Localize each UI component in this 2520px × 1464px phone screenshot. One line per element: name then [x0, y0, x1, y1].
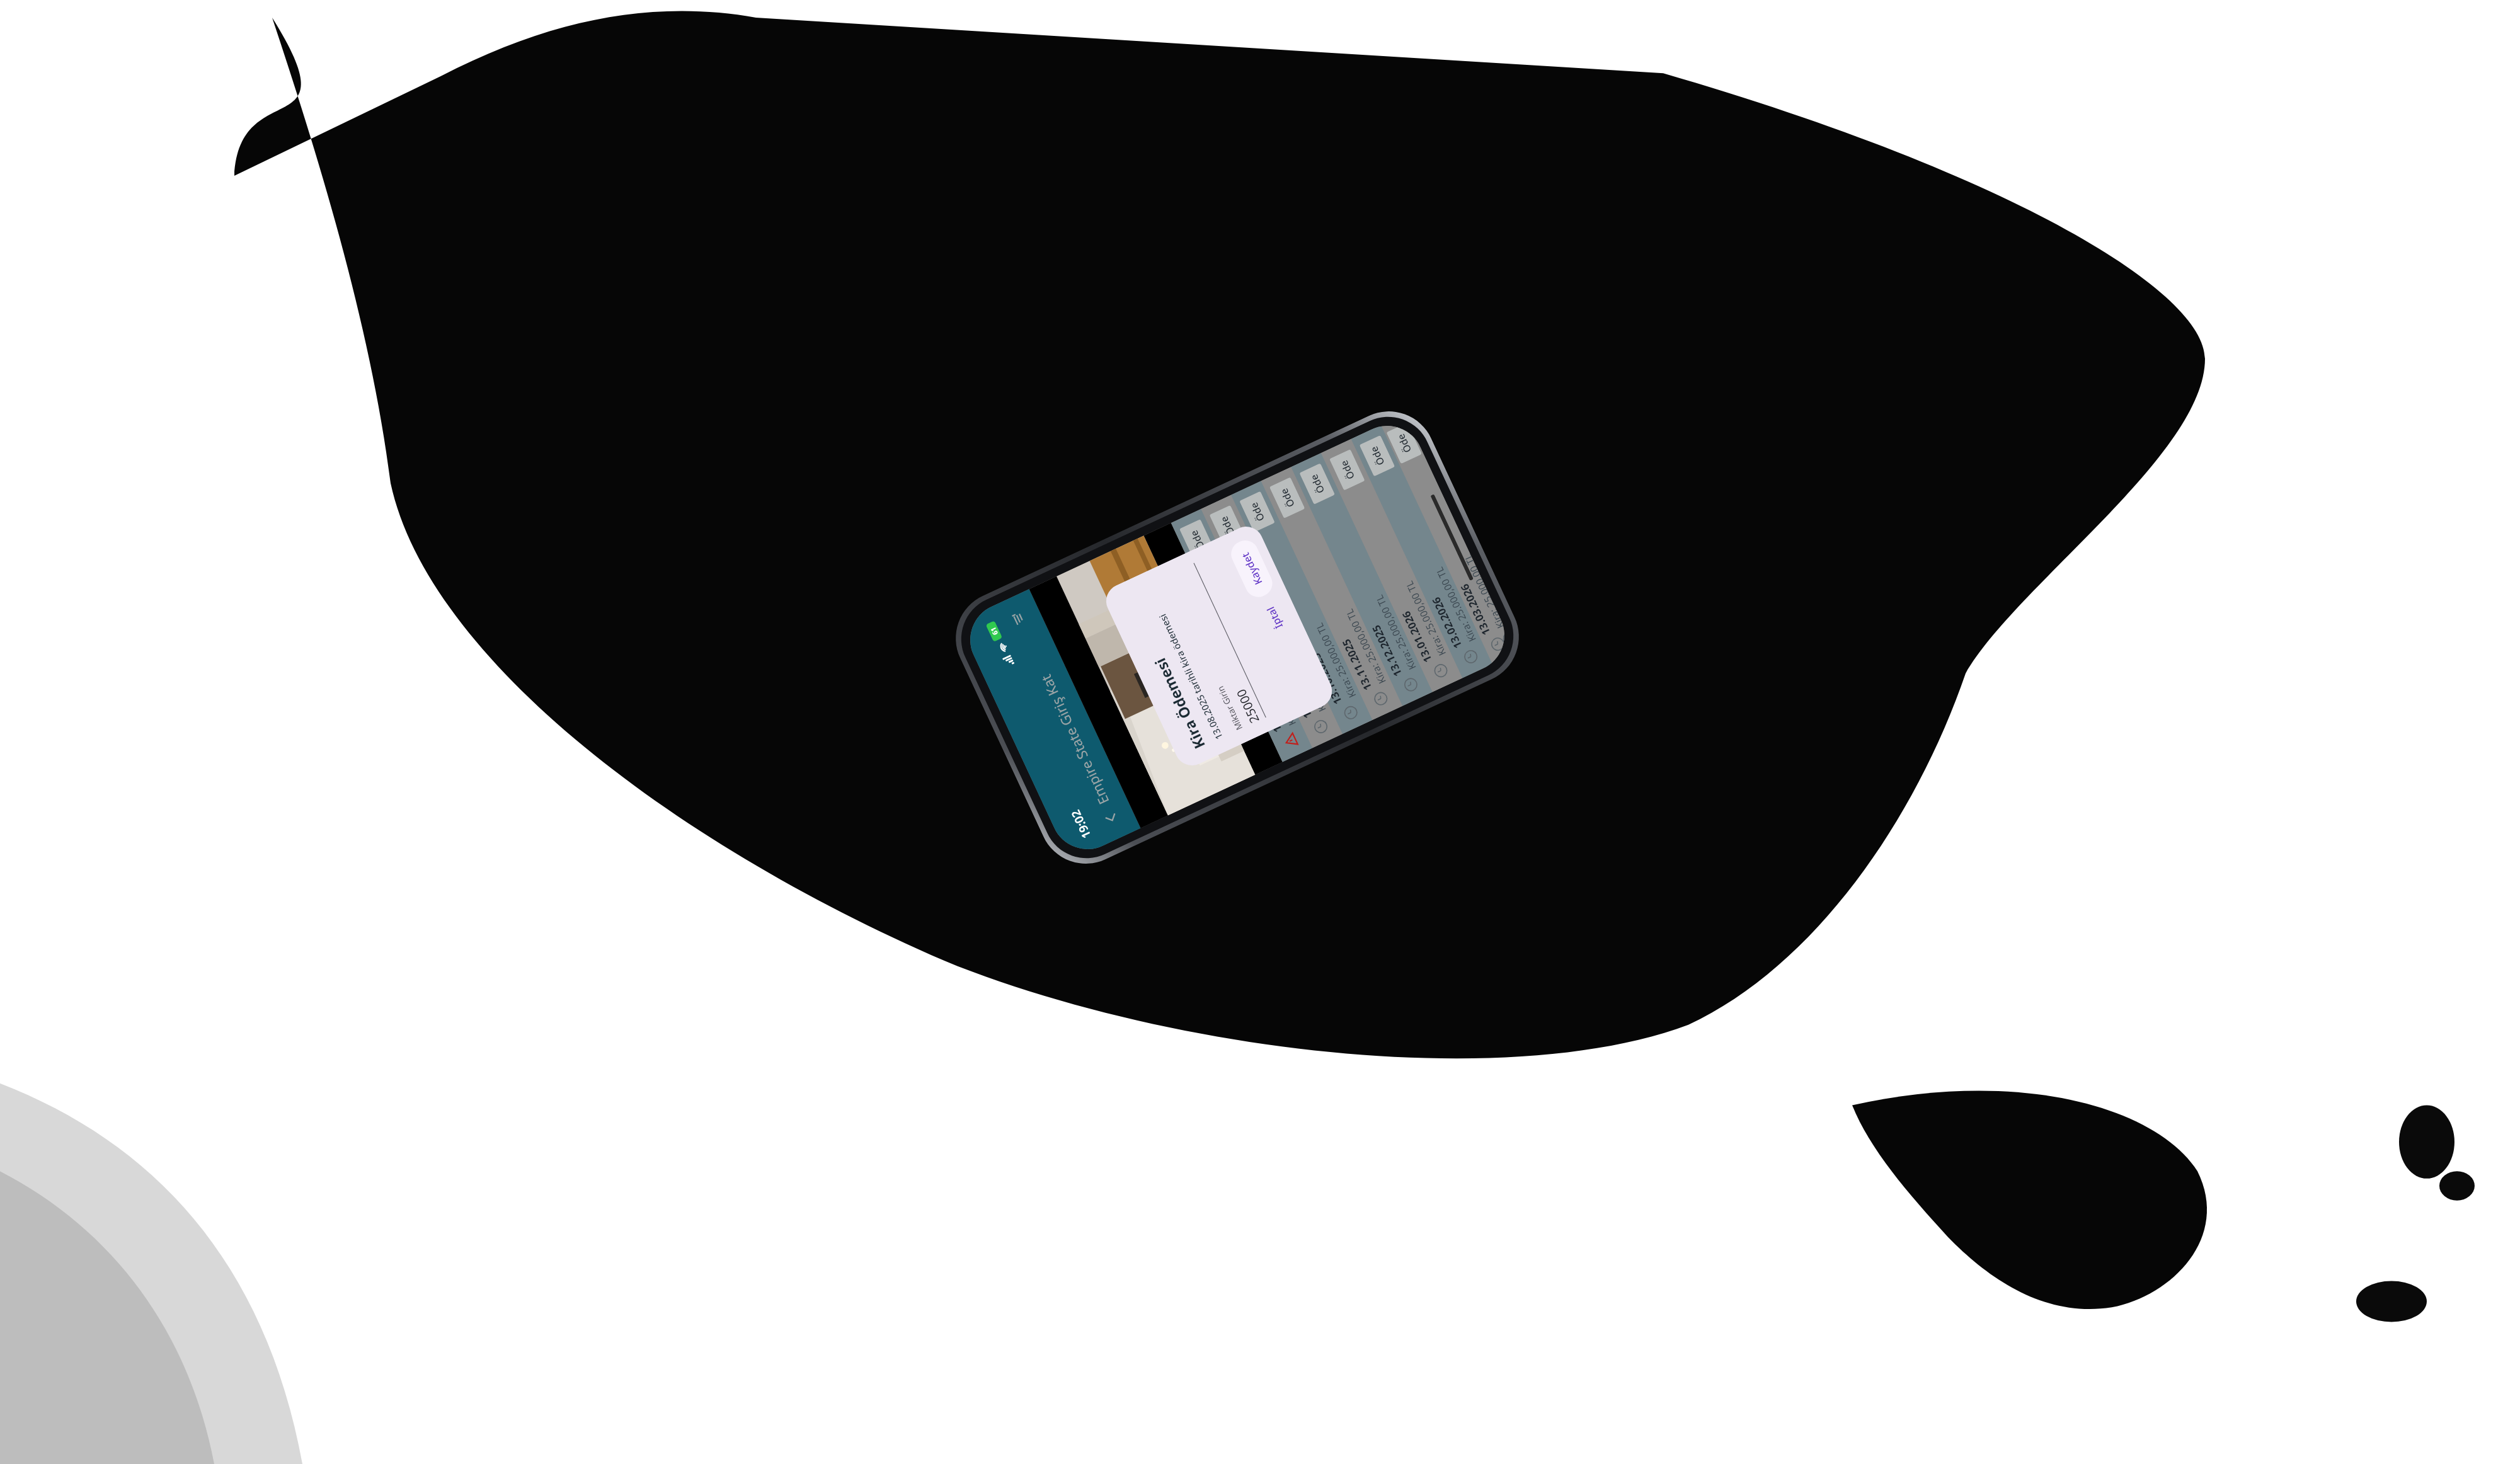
staticText: 13.12.2025 [1369, 623, 1405, 679]
button[interactable]: Menu [1002, 602, 1035, 635]
staticText: Kira: 25.000,00 TL [1461, 553, 1504, 631]
staticText: Kira: 25.000,00 TL [1312, 621, 1359, 700]
staticText: Öde [1367, 444, 1387, 468]
button[interactable]: Kaydet [1227, 536, 1277, 601]
button[interactable]: 13.01.2026 [1321, 439, 1463, 692]
staticText: Öde [1307, 472, 1327, 496]
staticText: Kira: 25.000,00 TL [1432, 565, 1479, 644]
staticText: 13.08.2025 tarihli kira ödemesi [1156, 612, 1225, 742]
staticText: Kira: 25.000,00 TL [1282, 635, 1329, 714]
button[interactable]: Öde [1329, 449, 1365, 491]
staticText: Öde [1187, 528, 1207, 552]
button[interactable]: 13.11.2025 [1261, 467, 1403, 720]
button[interactable]: Öde [1209, 505, 1245, 546]
button[interactable]: Öde [1299, 463, 1335, 505]
staticText: Öde [1277, 486, 1297, 510]
button[interactable]: Öde [1239, 491, 1275, 532]
staticText: Kira: 25.000,00 TL [1252, 649, 1299, 728]
staticText: 13.09.2025 [1279, 665, 1315, 721]
staticText: Miktar Girin [1214, 684, 1245, 732]
staticText: Öde [1394, 432, 1414, 455]
staticText: Kaydet [1238, 550, 1265, 587]
button[interactable]: İptal [1255, 594, 1294, 641]
staticText: Kira: 25.000,00 TL [1372, 593, 1419, 672]
button[interactable]: Back [1095, 801, 1127, 834]
button[interactable]: 13.12.2025 [1291, 453, 1433, 706]
staticText: 13.10.2025 [1309, 651, 1345, 707]
staticText: İptal [1263, 604, 1286, 631]
button[interactable]: 13.09.2025 [1201, 495, 1343, 748]
staticText: Kira: 25.000,00 TL [1402, 579, 1449, 658]
staticText: Öde [1217, 514, 1237, 538]
button[interactable]: 13.02.2026 [1351, 425, 1493, 678]
button[interactable]: 13.03.2026 [1381, 414, 1516, 664]
button[interactable]: Öde [1179, 519, 1215, 560]
staticText: 13.03.2026 [1457, 582, 1493, 638]
button[interactable]: 13.10.2025 [1231, 481, 1373, 734]
staticText: Kira: 25.000,00 TL [1342, 607, 1389, 686]
staticText: 25000 [1232, 686, 1263, 726]
staticText: 19:02 [1067, 807, 1094, 841]
staticText: Kira Ödemesi [1150, 655, 1209, 752]
staticText: 13.11.2025 [1339, 637, 1375, 693]
staticText: 61 [988, 626, 1000, 637]
staticText: Öde [1337, 458, 1357, 482]
button[interactable]: Öde [1269, 477, 1305, 519]
button[interactable]: 13.08.2025 [1171, 509, 1313, 762]
staticText: Empire State Giriş Kat [1036, 672, 1113, 808]
staticText: 13.01.2026 [1399, 609, 1435, 665]
staticText: 13.02.2026 [1429, 595, 1465, 651]
button[interactable]: Öde [1386, 423, 1422, 464]
button[interactable]: Öde [1359, 435, 1395, 477]
staticText: 13.08.2025 [1249, 679, 1285, 735]
staticText: Öde [1247, 500, 1267, 524]
